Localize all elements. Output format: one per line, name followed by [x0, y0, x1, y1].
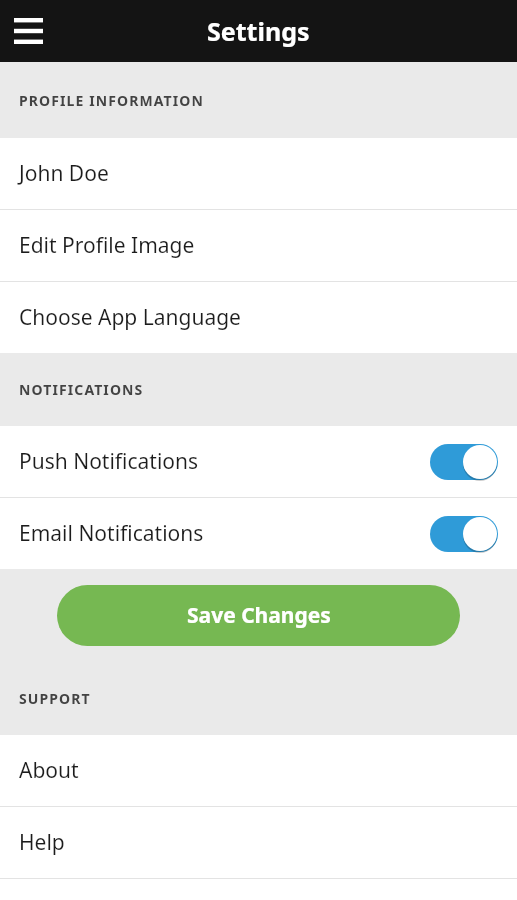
button[interactable]: Help [0, 807, 517, 878]
button[interactable]: Toggle Email Notifications [430, 516, 498, 552]
staticText: Save Changes [187, 601, 331, 630]
staticText: PROFILE INFORMATION [19, 91, 204, 110]
staticText: About [19, 756, 79, 785]
button[interactable]: Toggle Push Notifications [430, 444, 498, 480]
button[interactable]: Save Changes [57, 585, 460, 646]
button[interactable]: John Doe [0, 138, 517, 209]
button[interactable]: About [0, 735, 517, 806]
staticText: NOTIFICATIONS [19, 380, 144, 399]
staticText: Choose App Language [19, 303, 241, 332]
button[interactable]: Email Notifications [0, 498, 517, 569]
button[interactable]: Open navigation menu [14, 18, 43, 44]
staticText: Edit Profile Image [19, 231, 195, 260]
staticText: Settings [207, 14, 310, 48]
staticText: SUPPORT [19, 689, 91, 708]
staticText: Push Notifications [19, 447, 199, 476]
staticText: Email Notifications [19, 519, 204, 548]
button[interactable]: Choose App Language [0, 282, 517, 353]
staticText: Help [19, 828, 65, 857]
staticText: John Doe [19, 159, 109, 188]
button[interactable]: Edit Profile Image [0, 210, 517, 281]
button[interactable]: Push Notifications [0, 426, 517, 497]
